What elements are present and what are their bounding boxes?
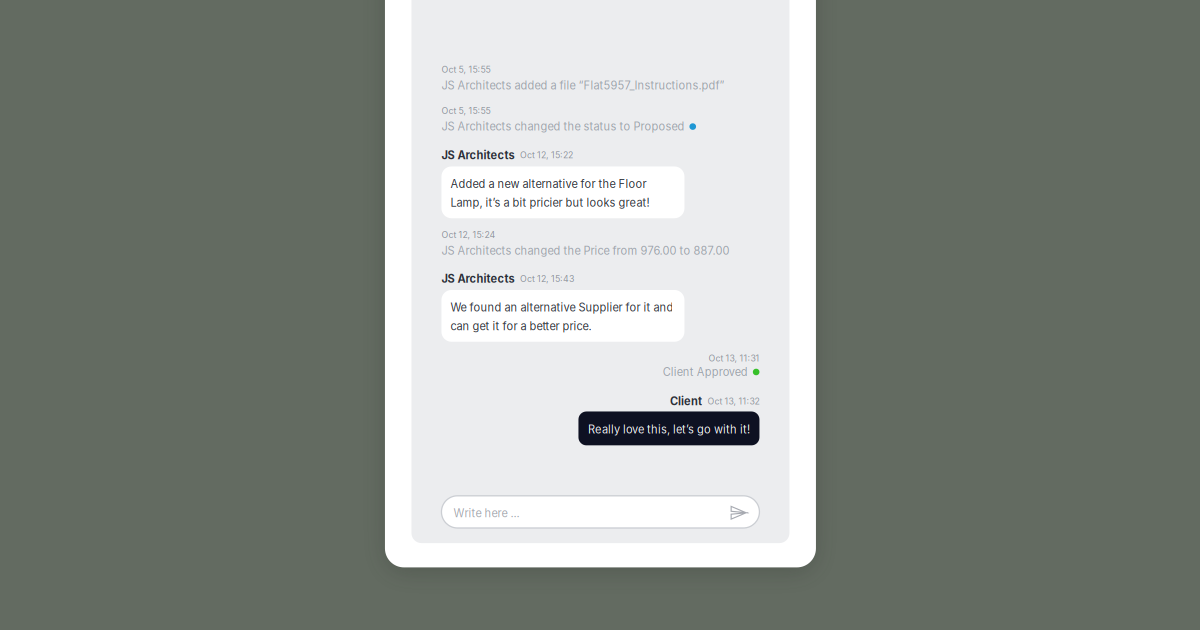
button[interactable]: Added a new alternative for the Floor La… <box>441 166 684 218</box>
staticText: JS Architects <box>441 148 514 162</box>
staticText: Oct 13, 11:32 <box>707 396 759 406</box>
staticText: Oct 12, 15:24 <box>441 229 495 240</box>
staticText: Added a new alternative for the Floor La… <box>450 177 649 209</box>
staticText: JS Architects <box>441 272 514 285</box>
staticText: Client Approved <box>663 365 748 379</box>
staticText: JS Architects changed the Price from 976… <box>441 244 729 257</box>
staticText: We found an alternative Supplier for it … <box>450 301 673 333</box>
staticText: Oct 5, 15:55 <box>441 105 490 116</box>
button[interactable]: We found an alternative Supplier for it … <box>441 290 684 342</box>
button[interactable]: Really love this, let’s go with it! <box>578 411 759 445</box>
staticText: JS Architects added a file “Flat5957_Ins… <box>441 79 724 92</box>
staticText: Oct 12, 15:22 <box>520 150 573 160</box>
staticText: Oct 13, 11:31 <box>708 353 759 364</box>
staticText: Client <box>670 394 702 408</box>
staticText: Oct 5, 15:55 <box>441 64 490 75</box>
staticText: Write here ... <box>453 507 519 520</box>
staticText: Oct 12, 15:43 <box>520 273 574 284</box>
button[interactable]: Write here ... <box>441 496 730 528</box>
staticText: JS Architects changed the status to Prop… <box>441 120 684 133</box>
staticText: Really love this, let’s go with it! <box>588 423 750 436</box>
button[interactable]: Send message <box>730 496 759 528</box>
